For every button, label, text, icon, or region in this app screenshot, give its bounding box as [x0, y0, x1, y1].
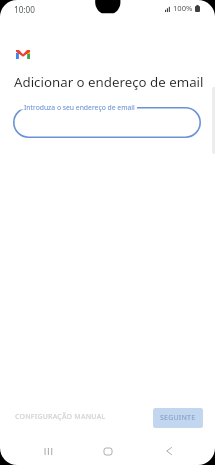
button[interactable]: CONFIGURAÇÃO MANUAL: [9, 406, 112, 428]
button[interactable]: SEGUINTE: [153, 408, 203, 428]
button[interactable]: Recent apps: [34, 437, 62, 465]
staticText: CONFIGURAÇÃO MANUAL: [15, 412, 106, 422]
staticText: Introduza o seu endereço de email: [24, 103, 135, 112]
staticText: Adicionar o endereço de email: [14, 73, 204, 91]
staticText: 10:00: [14, 4, 35, 15]
button[interactable]: [13, 107, 201, 138]
staticText: SEGUINTE: [160, 413, 196, 423]
staticText: 100%: [173, 3, 193, 13]
button[interactable]: Home: [94, 437, 122, 465]
button[interactable]: Back: [155, 437, 183, 465]
